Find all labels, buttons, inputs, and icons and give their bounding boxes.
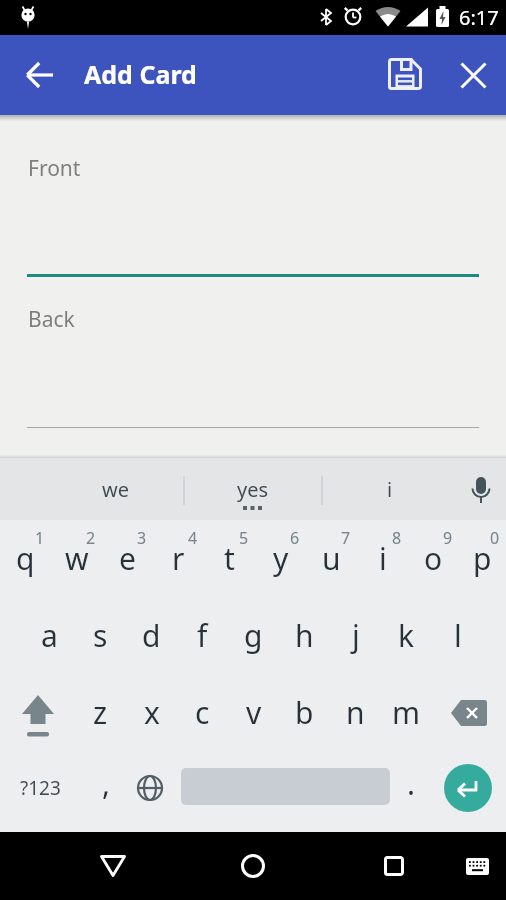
button[interactable] bbox=[432, 674, 506, 751]
button[interactable]: f bbox=[177, 597, 228, 674]
staticText: a bbox=[41, 615, 58, 656]
staticText: h bbox=[295, 615, 314, 656]
staticText: u bbox=[322, 538, 341, 579]
staticText: 6:17 bbox=[459, 4, 499, 31]
button[interactable] bbox=[0, 674, 75, 751]
button[interactable] bbox=[354, 832, 434, 900]
staticText: s bbox=[93, 615, 108, 656]
button[interactable]: x bbox=[126, 674, 177, 751]
staticText: 4 bbox=[188, 527, 198, 549]
staticText: z bbox=[93, 692, 108, 733]
staticText: e bbox=[119, 538, 136, 579]
staticText: y bbox=[273, 538, 289, 579]
button[interactable]: t bbox=[204, 520, 255, 597]
staticText: 5 bbox=[239, 527, 249, 549]
staticText: w bbox=[65, 538, 89, 579]
staticText: f bbox=[197, 615, 208, 656]
button[interactable]: z bbox=[75, 674, 126, 751]
staticText: d bbox=[142, 615, 161, 656]
staticText: l bbox=[454, 615, 462, 656]
staticText: 1 bbox=[35, 527, 45, 549]
button[interactable]: ?123 bbox=[5, 751, 75, 825]
button[interactable]: p bbox=[459, 520, 506, 597]
button[interactable]: y bbox=[255, 520, 306, 597]
staticText: v bbox=[246, 692, 262, 733]
button[interactable]: i bbox=[357, 520, 408, 597]
button[interactable] bbox=[448, 50, 498, 100]
staticText: . bbox=[407, 763, 416, 804]
button[interactable]: j bbox=[330, 597, 381, 674]
button[interactable]: k bbox=[381, 597, 432, 674]
button[interactable]: q bbox=[0, 520, 51, 597]
staticText: r bbox=[172, 538, 185, 579]
staticText: 9 bbox=[443, 527, 453, 549]
button[interactable]: , bbox=[85, 751, 127, 825]
staticText: Add Card bbox=[84, 57, 197, 91]
button[interactable] bbox=[27, 140, 479, 280]
button[interactable]: yes bbox=[198, 458, 308, 520]
staticText: i bbox=[387, 476, 393, 503]
staticText: 8 bbox=[392, 527, 402, 549]
button[interactable] bbox=[128, 751, 172, 825]
staticText: c bbox=[195, 692, 210, 733]
button[interactable]: . bbox=[390, 751, 432, 825]
button[interactable] bbox=[73, 832, 153, 900]
button[interactable]: r bbox=[153, 520, 204, 597]
staticText: 7 bbox=[341, 527, 351, 549]
staticText: 3 bbox=[137, 527, 147, 549]
button[interactable]: u bbox=[306, 520, 357, 597]
staticText: q bbox=[16, 538, 35, 579]
button[interactable]: o bbox=[408, 520, 459, 597]
button[interactable]: v bbox=[228, 674, 279, 751]
button[interactable]: s bbox=[75, 597, 126, 674]
staticText: ?123 bbox=[20, 775, 61, 801]
staticText: t bbox=[224, 538, 235, 579]
button[interactable]: we bbox=[60, 458, 170, 520]
staticText: n bbox=[346, 692, 365, 733]
button[interactable] bbox=[27, 293, 479, 430]
button[interactable] bbox=[377, 47, 433, 103]
button[interactable]: i bbox=[335, 458, 445, 520]
staticText: yes bbox=[237, 476, 269, 503]
staticText: Back bbox=[28, 305, 75, 334]
button[interactable]: l bbox=[432, 597, 483, 674]
staticText: m bbox=[392, 692, 421, 733]
button[interactable]: d bbox=[126, 597, 177, 674]
staticText: p bbox=[473, 538, 492, 579]
staticText: Front bbox=[28, 154, 81, 183]
staticText: b bbox=[295, 692, 314, 733]
staticText: o bbox=[424, 538, 443, 579]
staticText: g bbox=[244, 615, 263, 656]
button[interactable]: n bbox=[330, 674, 381, 751]
staticText: , bbox=[102, 763, 111, 804]
button[interactable]: h bbox=[279, 597, 330, 674]
button[interactable] bbox=[444, 764, 492, 812]
staticText: k bbox=[398, 615, 415, 656]
button[interactable] bbox=[213, 832, 293, 900]
button[interactable]: b bbox=[279, 674, 330, 751]
button[interactable]: c bbox=[177, 674, 228, 751]
staticText: j bbox=[352, 615, 360, 656]
button[interactable]: m bbox=[381, 674, 432, 751]
button[interactable]: w bbox=[51, 520, 102, 597]
button[interactable]: a bbox=[24, 597, 75, 674]
button[interactable] bbox=[12, 47, 68, 103]
staticText: 0 bbox=[490, 527, 500, 549]
staticText: 2 bbox=[86, 527, 96, 549]
staticText: we bbox=[102, 476, 129, 503]
button[interactable]: e bbox=[102, 520, 153, 597]
button[interactable] bbox=[455, 832, 499, 900]
staticText: x bbox=[144, 692, 160, 733]
staticText: i bbox=[379, 538, 387, 579]
button[interactable]: g bbox=[228, 597, 279, 674]
staticText: 6 bbox=[290, 527, 300, 549]
